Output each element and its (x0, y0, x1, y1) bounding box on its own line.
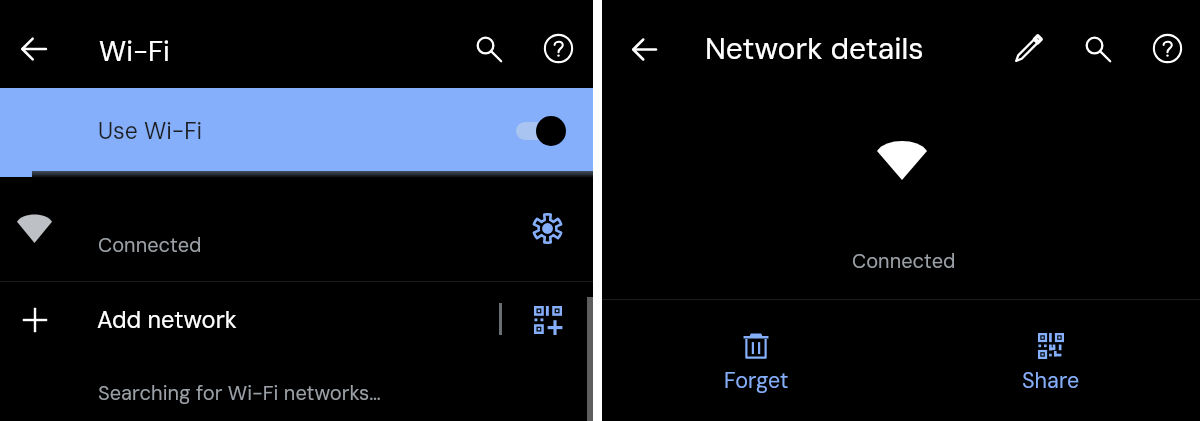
button[interactable]: Search (1073, 24, 1121, 72)
button[interactable]: Scan QR code (525, 297, 571, 343)
button[interactable]: Forget (602, 300, 906, 421)
staticText: Forget (724, 367, 789, 395)
button[interactable] (0, 88, 593, 171)
button[interactable] (0, 188, 593, 281)
button[interactable] (0, 282, 593, 358)
staticText: Network details (705, 29, 924, 68)
staticText: Searching for Wi-Fi networks… (98, 380, 381, 406)
staticText: Connected (98, 232, 202, 258)
staticText: Use Wi-Fi (98, 116, 203, 146)
staticText: Add network (97, 305, 237, 336)
button[interactable]: Help (1143, 24, 1191, 72)
staticText: Connected (852, 248, 956, 274)
button[interactable]: Network settings (524, 205, 570, 251)
button[interactable]: Search (464, 24, 512, 72)
button[interactable]: Back (10, 25, 58, 73)
button[interactable]: Edit (1004, 24, 1052, 72)
button[interactable]: Wi-Fi (99, 33, 170, 69)
button[interactable]: Share (906, 300, 1200, 421)
button[interactable]: Back (620, 25, 668, 73)
staticText: Share (1022, 367, 1080, 395)
button[interactable]: Network details (705, 29, 924, 68)
staticText: Wi-Fi (99, 33, 170, 69)
button[interactable]: Help (534, 24, 582, 72)
